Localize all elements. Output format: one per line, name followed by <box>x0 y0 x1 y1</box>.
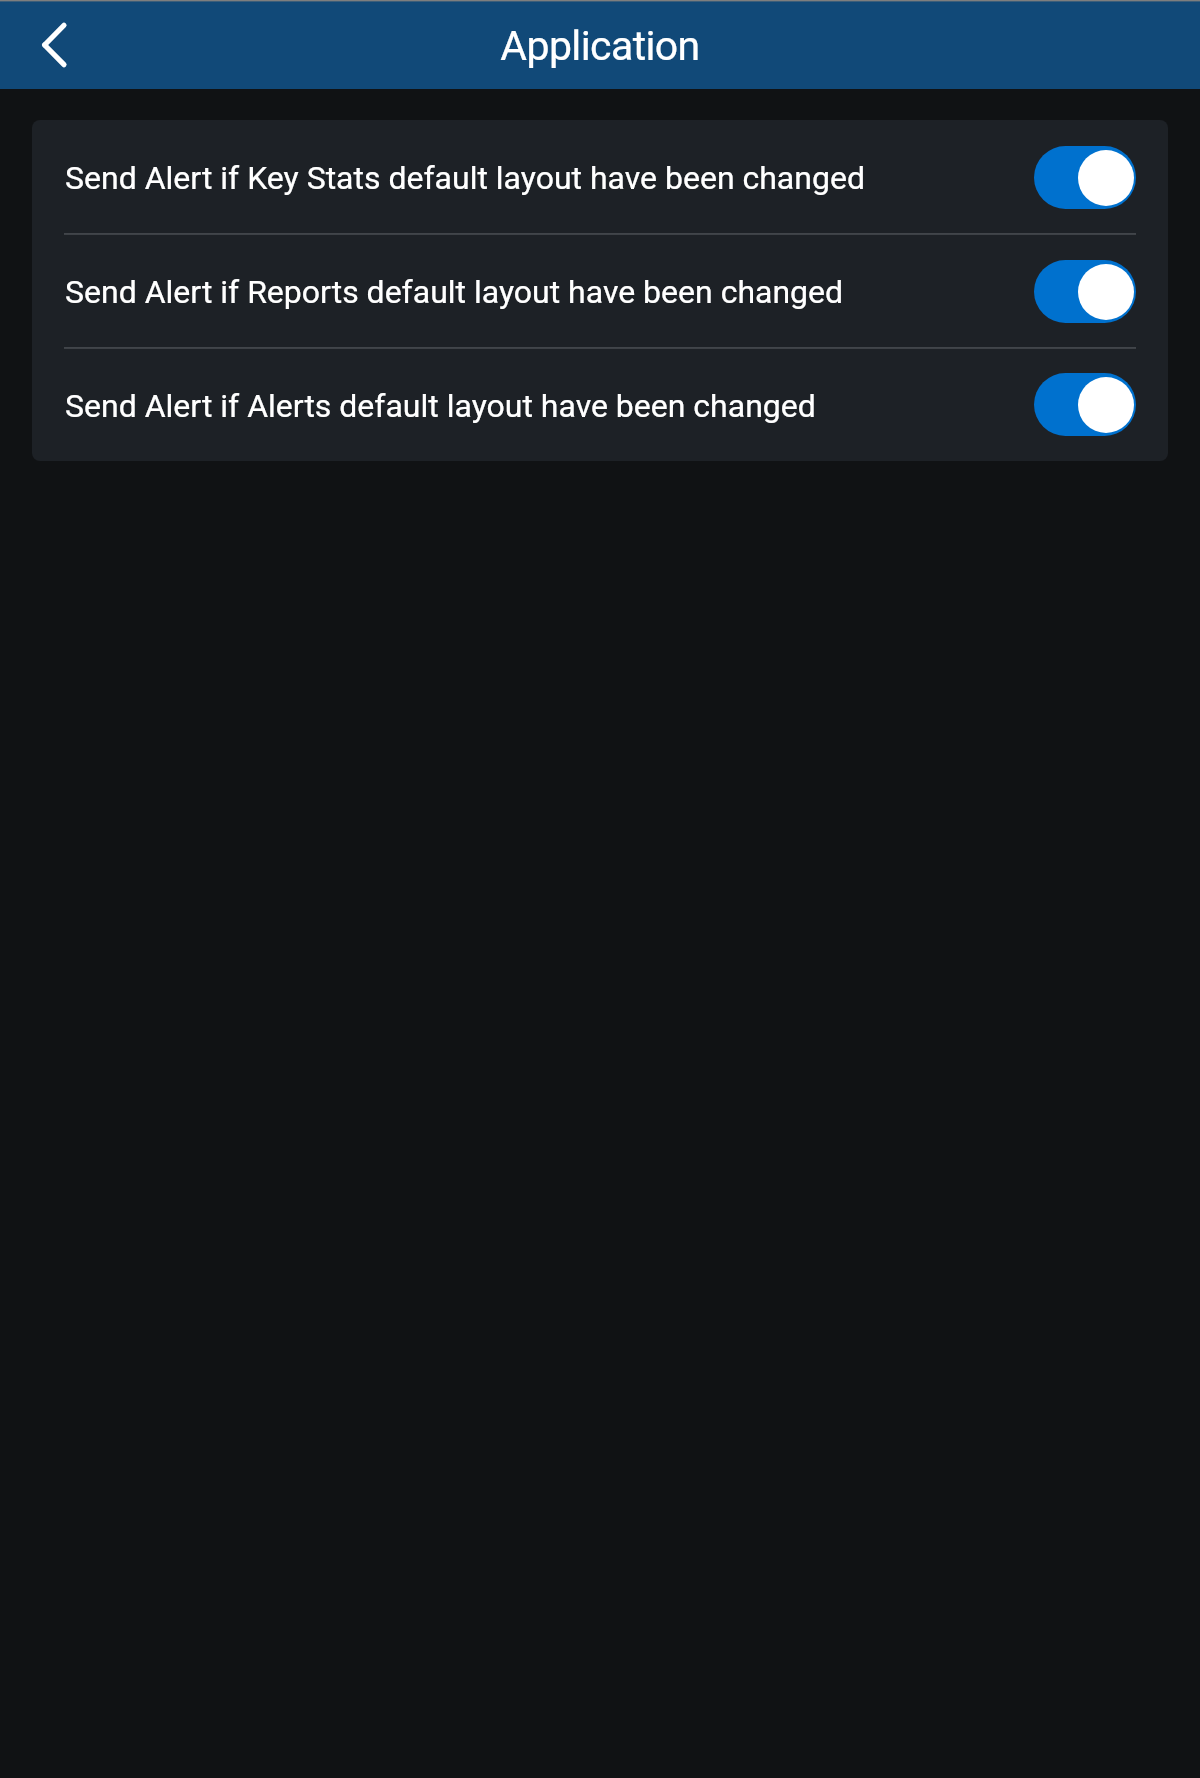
button[interactable]: Send Alert if Key Stats default layout h… <box>1034 146 1136 209</box>
button[interactable]: Send Alert if Key Stats default layout h… <box>32 120 1168 234</box>
button[interactable]: Send Alert if Alerts default layout have… <box>32 348 1168 461</box>
button[interactable]: Back <box>0 0 89 89</box>
button[interactable]: Send Alert if Reports default layout hav… <box>32 234 1168 348</box>
button[interactable]: Send Alert if Alerts default layout have… <box>1034 373 1136 436</box>
button[interactable]: Send Alert if Reports default layout hav… <box>1034 260 1136 323</box>
staticText: Application <box>500 22 700 70</box>
staticText: Send Alert if Alerts default layout have… <box>65 387 1022 425</box>
staticText: Send Alert if Key Stats default layout h… <box>65 159 1022 197</box>
staticText: Send Alert if Reports default layout hav… <box>65 273 1022 311</box>
